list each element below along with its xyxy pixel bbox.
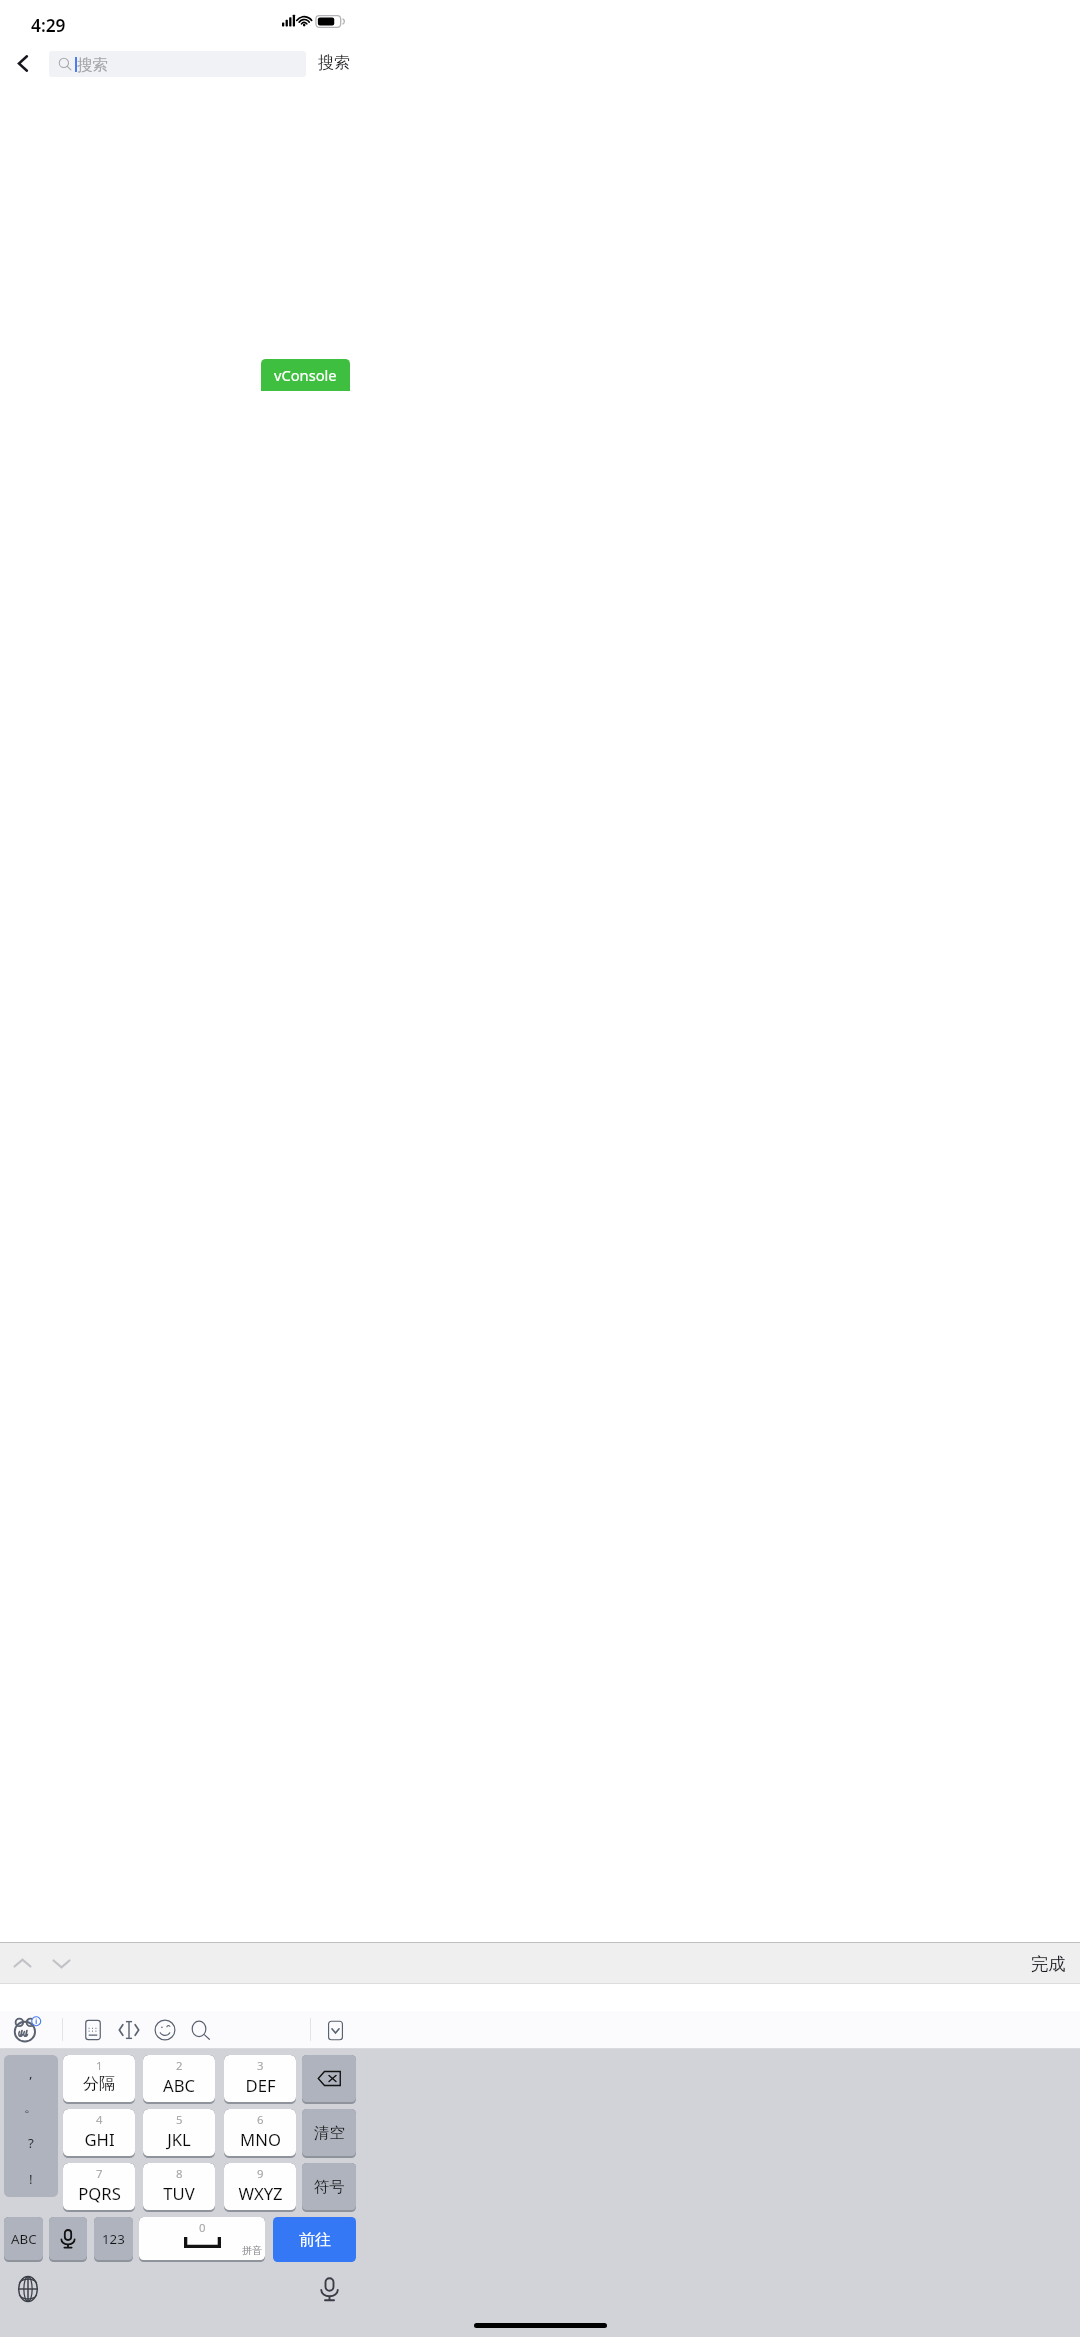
button[interactable]: , [4,2055,58,2090]
staticText: PQRS [78,2182,121,2205]
button[interactable]: ! [4,2161,58,2197]
button[interactable]: 完成 [1023,1947,1073,1980]
staticText: 分隔 [83,2074,115,2094]
staticText: 3 [257,2058,264,2073]
staticText: 搜索 [318,53,350,73]
staticText: 5 [176,2112,183,2127]
staticText: 4 [96,2112,103,2127]
button[interactable]: ? [4,2125,58,2161]
button[interactable]: 搜索 [49,51,306,77]
staticText: ! [29,2170,33,2188]
staticText: ABC [11,2230,37,2248]
staticText: JKL [167,2128,191,2151]
button[interactable]: Baidu input settings [13,2016,42,2045]
staticText: 4:29 [31,13,66,37]
button[interactable]: 6 [224,2109,296,2158]
button[interactable]: 9 [224,2163,296,2212]
button[interactable]: 123 [94,2217,133,2262]
staticText: TUV [163,2182,195,2205]
button[interactable]: 符号 [302,2163,356,2212]
button[interactable]: Hide keyboard [321,2016,349,2044]
staticText: 。 [24,2099,38,2116]
button[interactable]: 搜索 [310,47,357,79]
staticText: DEF [245,2074,276,2097]
button[interactable]: 0 [139,2217,265,2262]
button[interactable]: 4 [63,2109,135,2158]
staticText: , [29,2064,33,2082]
button[interactable]: ABC [4,2217,43,2262]
staticText: 前往 [299,2230,331,2250]
button[interactable]: Emoji [151,2016,179,2044]
button[interactable]: Change language [12,2273,44,2305]
button[interactable]: 7 [63,2163,135,2212]
staticText: 搜索 [77,55,108,74]
staticText: 123 [102,2230,125,2248]
button[interactable]: 前往 [273,2217,356,2262]
staticText: vConsole [274,365,337,385]
staticText: 8 [176,2166,183,2181]
button[interactable]: 。 [4,2090,58,2125]
button[interactable]: 3 [224,2055,296,2104]
staticText: 6 [257,2112,264,2127]
staticText: 符号 [314,2177,345,2196]
staticText: 清空 [314,2123,345,2142]
button[interactable]: Voice input [49,2217,87,2262]
staticText: 0 [199,2220,206,2235]
staticText: 2 [176,2058,183,2073]
button[interactable]: 5 [143,2109,215,2158]
button[interactable]: 8 [143,2163,215,2212]
staticText: 1 [96,2058,103,2073]
staticText: 完成 [1031,1953,1066,1975]
staticText: ? [28,2134,34,2152]
button[interactable]: Search [187,2016,215,2044]
button[interactable]: vConsole [261,359,350,391]
button[interactable]: Move cursor [115,2016,143,2044]
button[interactable]: Keyboard layout [79,2016,107,2044]
button[interactable]: 清空 [302,2109,356,2158]
staticText: 7 [96,2166,103,2181]
button[interactable]: Back [3,43,43,83]
staticText: 拼音 [242,2244,262,2257]
staticText: GHI [84,2128,115,2151]
staticText: MNO [240,2128,281,2151]
button[interactable]: Backspace [302,2055,356,2104]
button[interactable]: Dictation [313,2273,345,2305]
button[interactable]: 2 [143,2055,215,2104]
staticText: ABC [163,2074,195,2097]
button[interactable]: 1 [63,2055,135,2104]
button[interactable]: Next field [46,1948,77,1979]
staticText: 9 [257,2166,264,2181]
staticText: WXYZ [238,2182,283,2205]
button[interactable]: Previous field [7,1948,38,1979]
